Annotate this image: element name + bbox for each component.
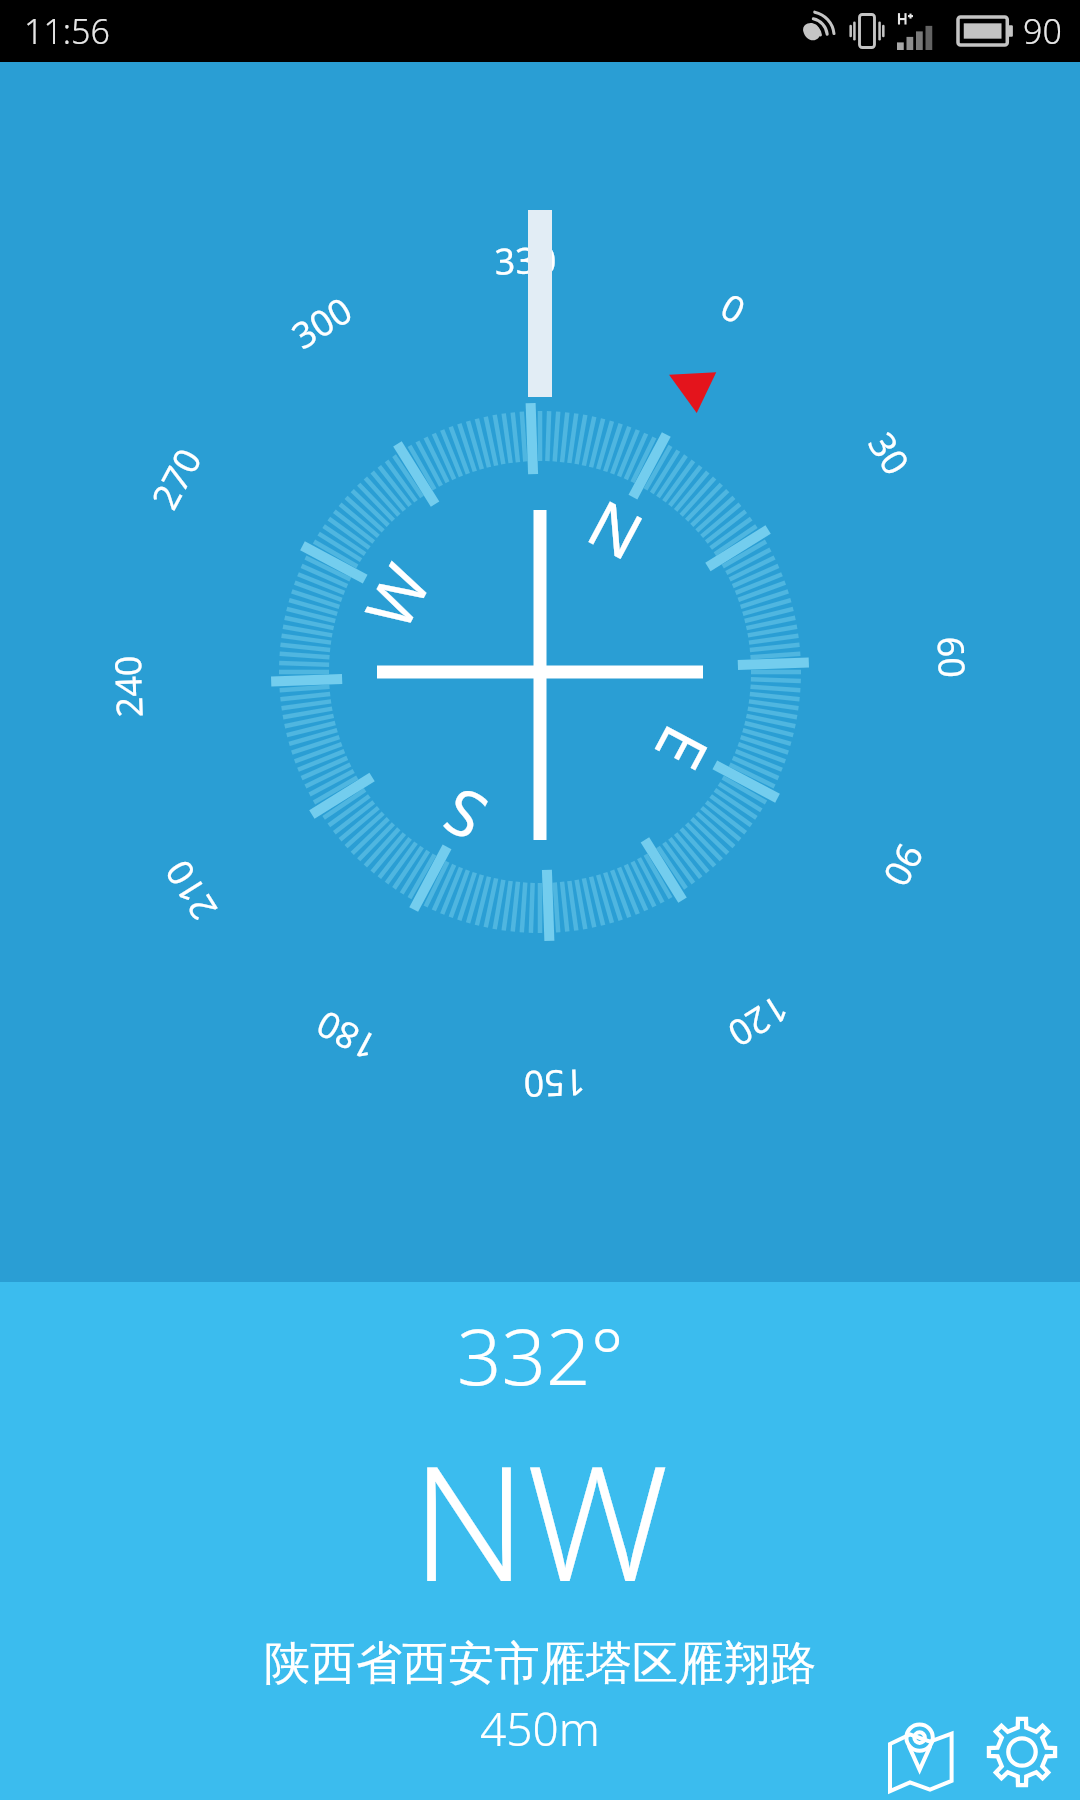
button[interactable]: Settings (974, 1704, 1070, 1800)
button[interactable]: Map (878, 1704, 974, 1800)
staticText: NW (411, 1412, 669, 1627)
staticText: 陕西省西安市雁塔区雁翔路 (264, 1635, 816, 1693)
staticText: 11:56 (24, 8, 110, 54)
staticText: 90 (1023, 8, 1062, 54)
staticText: 332° (457, 1302, 624, 1408)
staticText: 450m (480, 1697, 600, 1760)
